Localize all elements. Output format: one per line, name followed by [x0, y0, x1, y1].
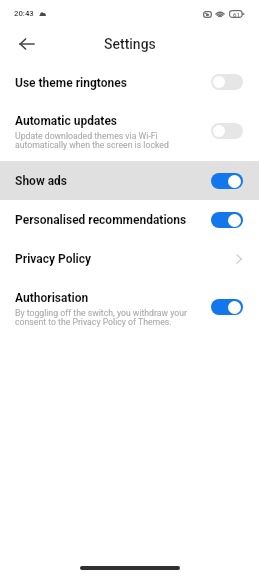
staticText: Automatic updates — [15, 114, 118, 128]
staticText: 20:43 — [14, 9, 34, 18]
button[interactable]: Toggle — [211, 212, 243, 228]
button[interactable]: Authorisation — [0, 278, 259, 339]
staticText: Show ads — [15, 174, 68, 188]
staticText: 61 — [233, 11, 240, 18]
button[interactable]: Automatic updates — [0, 101, 259, 161]
button[interactable]: Use theme ringtones — [0, 63, 259, 101]
staticText: Personalised recommendations — [15, 213, 187, 227]
staticText: Update downloaded themes via Wi-Fi autom… — [15, 131, 169, 151]
staticText: Privacy Policy — [15, 252, 92, 266]
button[interactable]: Show ads — [0, 161, 259, 200]
button[interactable]: Toggle — [211, 173, 243, 189]
button[interactable]: Privacy Policy — [0, 239, 259, 278]
button[interactable]: Toggle — [211, 74, 243, 90]
button[interactable]: Toggle — [211, 123, 243, 139]
button[interactable]: Toggle — [211, 299, 243, 315]
staticText: Settings — [104, 36, 156, 52]
button[interactable]: Personalised recommendations — [0, 200, 259, 239]
staticText: Authorisation — [15, 291, 89, 305]
staticText: By toggling off the switch, you withdraw… — [15, 308, 187, 328]
staticText: Use theme ringtones — [15, 76, 127, 90]
button[interactable]: Back — [16, 34, 36, 54]
